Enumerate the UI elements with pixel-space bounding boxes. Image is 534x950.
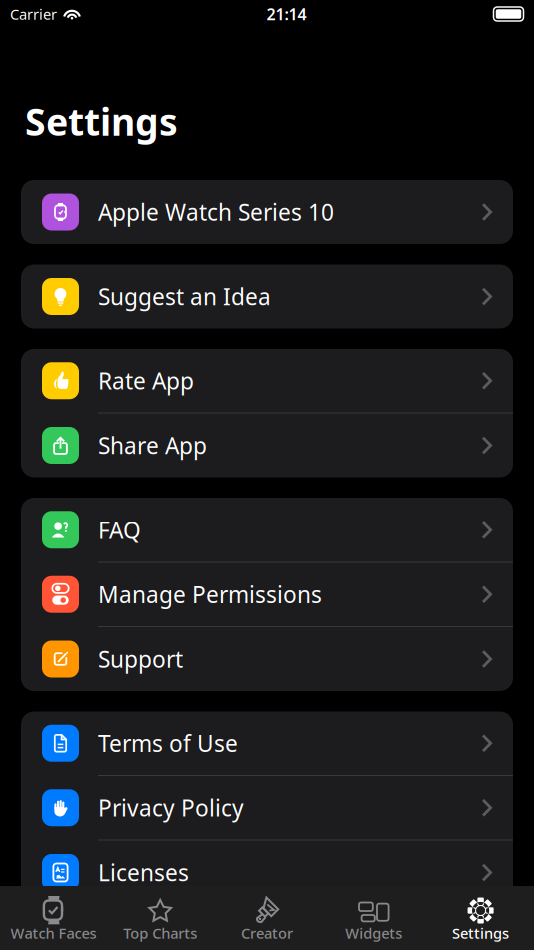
- staticText: Share App: [98, 430, 207, 460]
- button[interactable]: Manage Permissions: [21, 562, 513, 627]
- staticText: Settings: [25, 96, 178, 146]
- staticText: Privacy Policy: [98, 793, 244, 823]
- staticText: Widgets: [345, 923, 402, 943]
- staticText: Manage Permissions: [98, 579, 322, 609]
- button[interactable]: Rate App: [21, 349, 513, 413]
- button[interactable]: Settings: [427, 886, 534, 950]
- staticText: Support: [98, 644, 183, 674]
- staticText: Terms of Use: [98, 728, 238, 758]
- staticText: FAQ: [98, 515, 141, 545]
- staticText: Carrier: [10, 4, 57, 24]
- staticText: Creator: [241, 923, 293, 943]
- button[interactable]: Share App: [21, 413, 513, 477]
- button[interactable]: Suggest an Idea: [21, 264, 513, 328]
- button[interactable]: Support: [21, 627, 513, 691]
- button[interactable]: Licenses: [21, 840, 513, 904]
- button[interactable]: Widgets: [320, 886, 427, 950]
- button[interactable]: Top Charts: [107, 886, 214, 950]
- staticText: Top Charts: [123, 923, 197, 943]
- button[interactable]: Creator: [214, 886, 320, 950]
- staticText: 21:14: [266, 3, 306, 25]
- staticText: Licenses: [98, 857, 189, 887]
- button[interactable]: Privacy Policy: [21, 776, 513, 840]
- button[interactable]: Terms of Use: [21, 711, 513, 776]
- staticText: Rate App: [98, 366, 194, 396]
- button[interactable]: Apple Watch Series 10: [21, 180, 513, 244]
- button[interactable]: Watch Faces: [0, 886, 107, 950]
- button[interactable]: FAQ: [21, 498, 513, 562]
- staticText: Suggest an Idea: [98, 281, 271, 311]
- staticText: Apple Watch Series 10: [98, 197, 334, 227]
- staticText: Watch Faces: [10, 923, 96, 943]
- staticText: Settings: [452, 923, 509, 943]
